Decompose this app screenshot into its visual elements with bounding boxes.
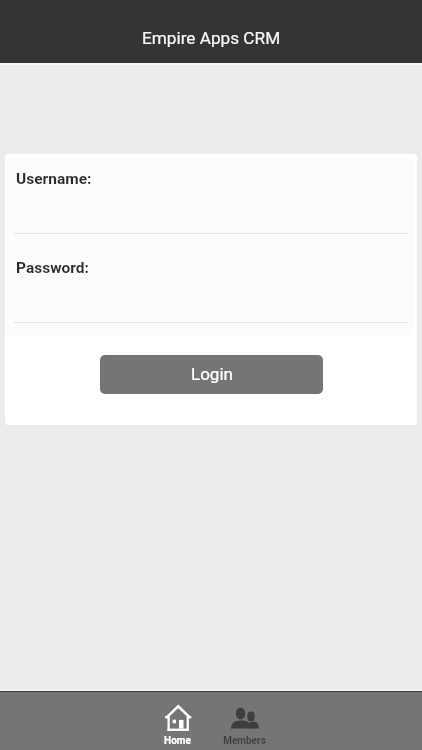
button[interactable]: Login xyxy=(100,355,323,394)
button[interactable]: Members xyxy=(211,692,278,750)
button[interactable]: Username input field xyxy=(14,164,408,234)
staticText: Members xyxy=(223,735,266,747)
staticText: Login xyxy=(191,364,233,384)
staticText: Empire Apps CRM xyxy=(142,28,281,48)
button[interactable]: Password input field xyxy=(14,253,408,323)
staticText: Username: xyxy=(16,170,92,188)
staticText: Password: xyxy=(16,259,89,277)
staticText: Home xyxy=(164,735,191,747)
button[interactable]: Home xyxy=(144,692,211,750)
